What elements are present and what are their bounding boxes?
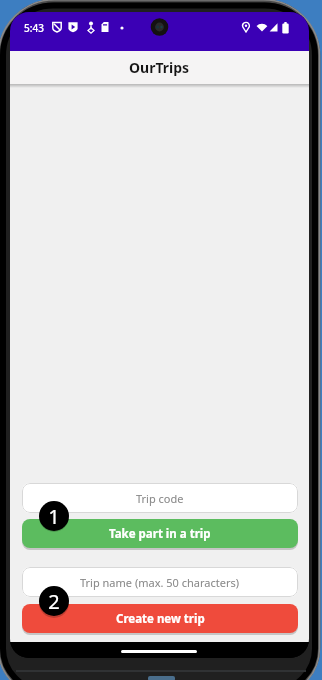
staticText: Trip name (max. 50 characters) — [80, 575, 240, 590]
staticText: 5:43 — [24, 21, 44, 35]
button[interactable]: Trip code — [22, 483, 298, 513]
staticText: Take part in a trip — [109, 526, 211, 542]
staticText: 1 — [48, 503, 60, 530]
button[interactable]: Create new trip — [22, 604, 298, 633]
staticText: Create new trip — [116, 611, 205, 627]
staticText: Trip code — [136, 491, 184, 506]
staticText: OurTrips — [129, 58, 190, 77]
button[interactable]: Take part in a trip — [22, 519, 298, 548]
button[interactable]: 1 — [39, 501, 69, 531]
staticText: 2 — [48, 588, 60, 615]
button[interactable]: Trip name (max. 50 characters) — [22, 567, 298, 597]
button[interactable]: 2 — [39, 586, 69, 616]
